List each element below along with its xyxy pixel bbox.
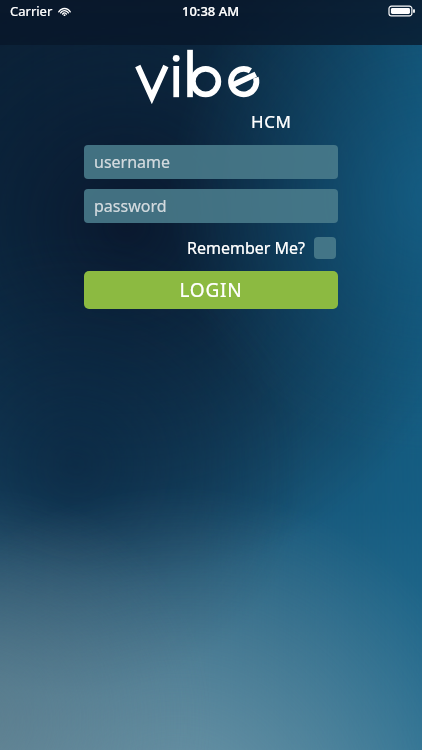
button[interactable]: Remember Me?: [185, 235, 338, 261]
other: vibe: [133, 48, 293, 108]
staticText: 10:38 AM: [182, 2, 240, 20]
staticText: HCM: [251, 110, 292, 133]
staticText: LOGIN: [179, 277, 243, 303]
button[interactable]: LOGIN: [84, 271, 338, 309]
button[interactable]: username: [84, 145, 338, 179]
staticText: Carrier: [10, 2, 53, 20]
staticText: Remember Me?: [187, 237, 306, 259]
staticText: password: [94, 195, 167, 217]
staticText: username: [94, 151, 171, 173]
button[interactable]: password: [84, 189, 338, 223]
